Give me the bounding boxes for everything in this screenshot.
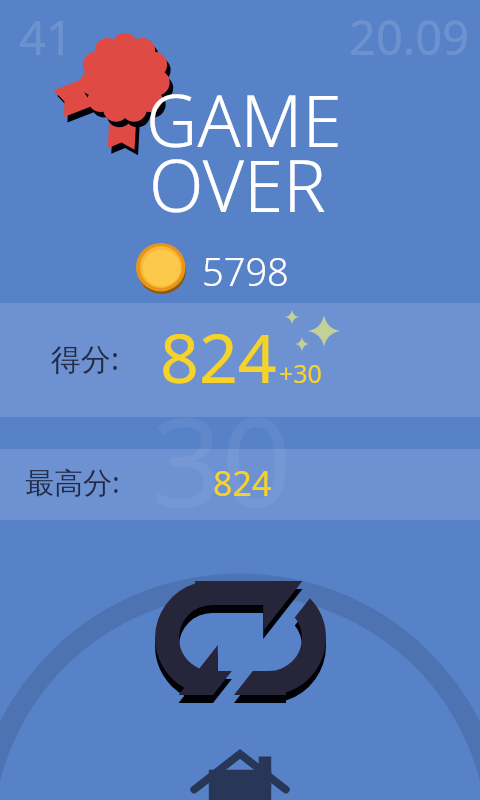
staticText: +30 bbox=[279, 356, 322, 390]
staticText: OVER bbox=[149, 136, 326, 233]
staticText: 5798 bbox=[202, 245, 289, 297]
staticText: 最高分: bbox=[25, 462, 120, 502]
staticText: GAME bbox=[146, 71, 342, 168]
staticText: 824 bbox=[213, 460, 272, 506]
staticText: 30 bbox=[152, 377, 292, 543]
staticText: 得分: bbox=[51, 338, 120, 379]
button[interactable]: Home bbox=[188, 742, 292, 800]
staticText: 20.09 bbox=[349, 5, 470, 69]
button[interactable]: Replay bbox=[155, 581, 326, 703]
staticText: 824 bbox=[160, 310, 277, 403]
staticText: 41 bbox=[19, 5, 73, 69]
